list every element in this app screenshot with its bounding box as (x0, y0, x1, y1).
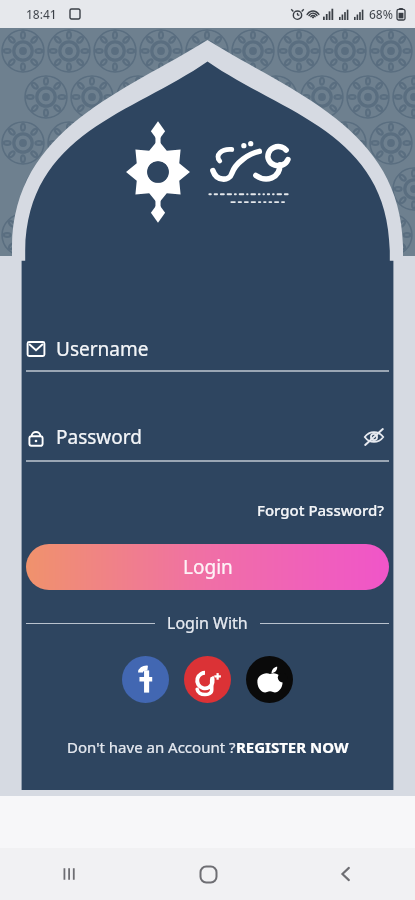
button[interactable]: Recents (0, 848, 139, 900)
staticText: Don't have an Account ? (67, 737, 236, 757)
staticText: REGISTER NOW (236, 737, 349, 757)
staticText: Username (56, 336, 149, 362)
button[interactable]: Password (26, 422, 389, 462)
button[interactable]: Login with Google (184, 656, 231, 703)
staticText: Login With (167, 612, 248, 634)
button[interactable]: Show password (359, 422, 389, 452)
staticText: Login (183, 554, 233, 580)
button[interactable]: Forgot Password? (253, 496, 389, 524)
button[interactable]: Login (26, 544, 389, 590)
staticText: Password (56, 424, 142, 450)
button[interactable]: Login with Facebook (122, 656, 169, 703)
staticText: 68% (369, 6, 393, 22)
button[interactable]: Login with Apple (246, 656, 293, 703)
button[interactable]: Home (139, 848, 277, 900)
button[interactable]: Username (26, 336, 389, 372)
staticText: 18:41 (26, 6, 57, 22)
button[interactable]: Don't have an Account ? (0, 737, 415, 757)
button[interactable]: Back (277, 848, 415, 900)
